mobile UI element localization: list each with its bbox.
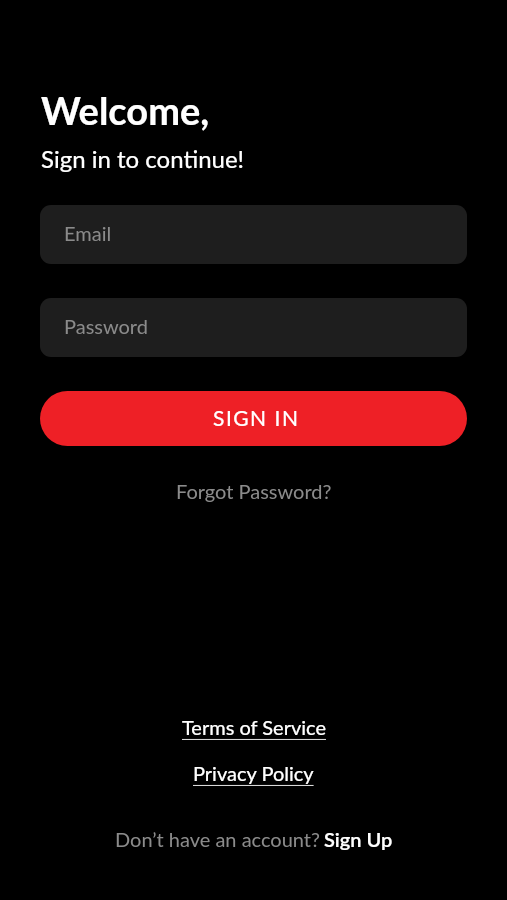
staticText: Email: [64, 221, 112, 245]
button[interactable]: Terms of Service: [172, 712, 336, 742]
staticText: Privacy Policy: [193, 761, 314, 785]
button[interactable]: Privacy Policy: [183, 758, 324, 788]
button[interactable]: Password: [40, 298, 467, 357]
button[interactable]: Forgot Password?: [166, 475, 342, 507]
button[interactable]: Sign Up: [324, 827, 393, 851]
button[interactable]: SIGN IN: [40, 391, 467, 446]
staticText: Password: [64, 314, 148, 338]
staticText: Welcome,: [41, 87, 210, 133]
staticText: SIGN IN: [213, 405, 300, 430]
staticText: Sign Up: [324, 827, 393, 851]
staticText: Don’t have an account?: [115, 827, 320, 851]
staticText: Sign in to continue!: [41, 144, 245, 173]
staticText: Terms of Service: [182, 715, 326, 739]
button[interactable]: Email: [40, 205, 467, 264]
staticText: Forgot Password?: [176, 479, 332, 503]
